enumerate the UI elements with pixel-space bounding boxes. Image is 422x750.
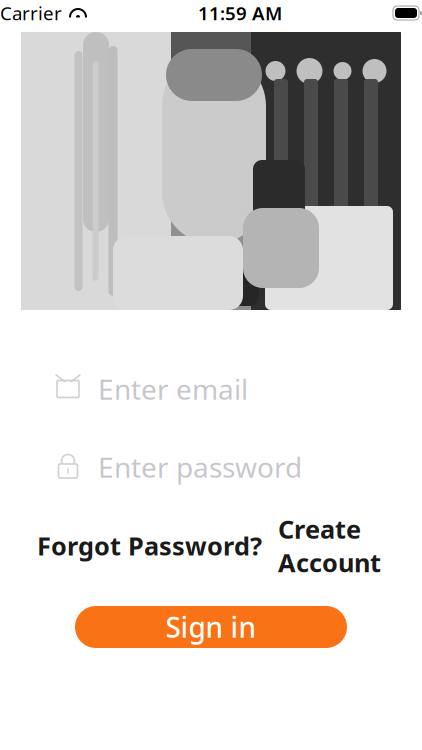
staticText: Sign in <box>165 608 256 646</box>
button[interactable]: Create Account <box>278 512 381 579</box>
staticText: Forgot Password? <box>37 529 262 562</box>
staticText: Create Account <box>278 512 381 579</box>
staticText: Enter password <box>98 448 302 486</box>
staticText: Enter email <box>98 370 248 408</box>
button[interactable]: Enter email <box>6 372 416 406</box>
staticText: 11:59 AM <box>198 1 282 25</box>
staticText: Carrier <box>0 1 62 25</box>
button[interactable]: Enter password <box>6 450 416 484</box>
button[interactable]: Sign in <box>75 606 347 648</box>
button[interactable]: Forgot Password? <box>37 529 262 562</box>
